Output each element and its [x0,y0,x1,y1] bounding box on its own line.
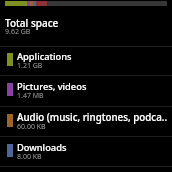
button[interactable]: Audio (music, ringtones, podca.. [0,108,172,136]
staticText: 8.00 KB [17,152,42,162]
staticText: 1.21 GB [17,61,43,71]
staticText: Audio (music, ringtones, podca.. [17,111,171,124]
staticText: 9.62 GB [5,27,31,37]
button[interactable]: Downloads [0,138,172,166]
staticText: Total space [5,16,59,30]
button[interactable]: Applications [0,47,172,75]
staticText: 1.47 MB [17,91,44,101]
staticText: Downloads [17,141,171,154]
button[interactable]: Pictures, videos [0,77,172,106]
staticText: 60.00 KB [17,122,46,132]
staticText: Pictures, videos [17,80,171,93]
button[interactable]: Total space [0,6,172,46]
staticText: Applications [17,50,171,63]
